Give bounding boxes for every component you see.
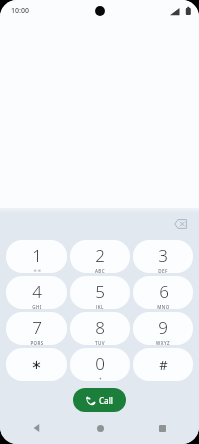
staticText: ∗ — [31, 357, 42, 372]
button[interactable]: Call — [73, 388, 126, 412]
staticText: Call — [99, 395, 113, 406]
staticText: 6 — [159, 280, 169, 303]
button[interactable]: 7 — [6, 312, 67, 345]
staticText: ∞∞ — [33, 268, 42, 273]
button[interactable]: 8 — [70, 312, 130, 345]
staticText: WXYZ — [156, 340, 170, 345]
button[interactable]: 0 — [70, 348, 130, 381]
staticText: 4 — [32, 280, 42, 303]
staticText: 2 — [95, 244, 105, 267]
button[interactable]: 3 — [133, 240, 193, 273]
staticText: 8 — [95, 316, 105, 339]
staticText: 10:00 — [11, 6, 29, 16]
staticText: 1 — [32, 244, 42, 267]
button[interactable]: 1 — [6, 240, 67, 273]
staticText: 9 — [158, 316, 168, 339]
staticText: JKL — [96, 304, 104, 309]
staticText: ABC — [95, 268, 105, 273]
staticText: MNO — [157, 304, 170, 309]
staticText: + — [99, 376, 102, 381]
button[interactable]: 9 — [133, 312, 193, 345]
button[interactable]: # — [133, 348, 193, 381]
button[interactable]: Back — [24, 415, 50, 441]
button[interactable]: Backspace — [167, 213, 193, 235]
button[interactable]: Recent apps — [149, 415, 175, 441]
staticText: PQRS — [30, 340, 44, 345]
button[interactable]: 4 — [6, 276, 67, 309]
staticText: 3 — [158, 244, 168, 267]
staticText: 5 — [95, 280, 105, 303]
staticText: 7 — [32, 316, 42, 339]
button[interactable]: 5 — [70, 276, 130, 309]
button[interactable]: ∗ — [6, 348, 67, 381]
button[interactable]: Home — [87, 415, 113, 441]
staticText: TUV — [95, 340, 105, 345]
button[interactable]: 6 — [133, 276, 193, 309]
staticText: # — [159, 356, 168, 374]
staticText: DEF — [158, 268, 168, 273]
staticText: 0 — [95, 352, 105, 375]
staticText: GHI — [32, 304, 42, 309]
button[interactable]: 2 — [70, 240, 130, 273]
